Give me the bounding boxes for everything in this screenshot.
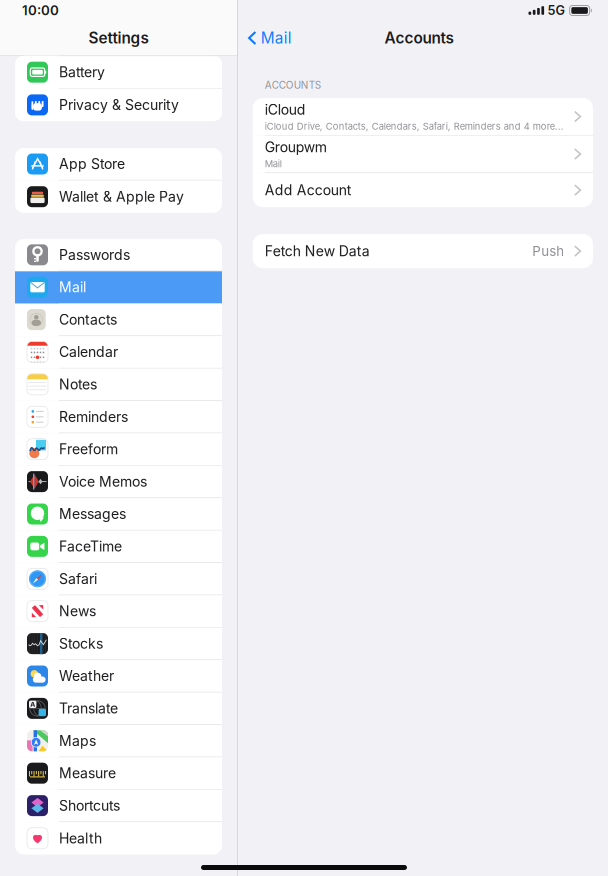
button[interactable]: Freeform <box>15 433 222 466</box>
staticText: Calendar <box>59 343 118 360</box>
staticText: ACCOUNTS <box>265 79 321 91</box>
button[interactable]: Measure <box>15 757 222 790</box>
button[interactable]: Passwords <box>15 239 222 271</box>
button[interactable]: Fetch New Data <box>253 234 593 268</box>
button[interactable]: Health <box>15 822 222 854</box>
button[interactable]: Reminders <box>15 401 222 433</box>
staticText: Messages <box>59 505 126 522</box>
staticText: Mail <box>59 279 86 296</box>
staticText: 10:00 <box>22 2 59 18</box>
button[interactable]: Stocks <box>15 628 222 660</box>
button[interactable]: Battery <box>15 56 222 89</box>
button[interactable]: Safari <box>15 563 222 595</box>
staticText: 5G <box>548 3 565 18</box>
button[interactable]: Add Account <box>253 173 593 207</box>
staticText: iCloud <box>265 101 306 118</box>
button[interactable]: Weather <box>15 660 222 692</box>
staticText: Contacts <box>59 311 117 328</box>
button[interactable]: A <box>15 692 222 725</box>
button[interactable]: iCloud <box>253 98 593 136</box>
staticText: Maps <box>59 732 96 749</box>
staticText: Reminders <box>59 408 128 425</box>
button[interactable]: Notes <box>15 368 222 401</box>
button[interactable]: Privacy & Security <box>15 89 222 121</box>
staticText: Weather <box>59 667 114 684</box>
staticText: App Store <box>59 155 125 172</box>
staticText: Mail <box>265 158 282 169</box>
button[interactable]: News <box>15 595 222 628</box>
staticText: Settings <box>88 29 148 47</box>
button[interactable]: Wallet & Apple Pay <box>15 180 222 213</box>
staticText: Voice Memos <box>59 473 147 490</box>
staticText: Freeform <box>59 441 118 458</box>
staticText: Accounts <box>384 29 453 47</box>
staticText: Fetch New Data <box>265 243 370 259</box>
staticText: Translate <box>59 700 118 717</box>
staticText: Passwords <box>59 246 130 263</box>
staticText: iCloud Drive, Contacts, Calendars, Safar… <box>265 121 564 132</box>
staticText: Push <box>532 243 564 259</box>
staticText: Battery <box>59 64 105 81</box>
staticText: Measure <box>59 765 116 782</box>
button[interactable]: Voice Memos <box>15 466 222 498</box>
staticText: Notes <box>59 376 97 393</box>
staticText: Safari <box>59 570 97 587</box>
button[interactable]: App Store <box>15 148 222 180</box>
button[interactable]: Contacts <box>15 304 222 336</box>
button[interactable]: Calendar <box>15 336 222 368</box>
staticText: FaceTime <box>59 538 122 555</box>
staticText: A <box>30 700 35 708</box>
staticText: Groupwm <box>265 139 327 156</box>
staticText: Stocks <box>59 635 103 652</box>
button[interactable]: Shortcuts <box>15 790 222 822</box>
button[interactable]: Mail <box>15 271 222 304</box>
staticText: Wallet & Apple Pay <box>59 188 184 205</box>
staticText: News <box>59 603 96 620</box>
button[interactable]: Mail <box>238 21 292 55</box>
staticText: Shortcuts <box>59 797 120 814</box>
staticText: Privacy & Security <box>59 96 179 113</box>
staticText: Add Account <box>265 182 352 198</box>
staticText: Health <box>59 830 102 847</box>
button[interactable]: FaceTime <box>15 530 222 563</box>
button[interactable]: Groupwm <box>253 136 593 173</box>
button[interactable]: Maps <box>15 725 222 757</box>
staticText: Mail <box>261 29 292 47</box>
button[interactable]: Messages <box>15 498 222 530</box>
